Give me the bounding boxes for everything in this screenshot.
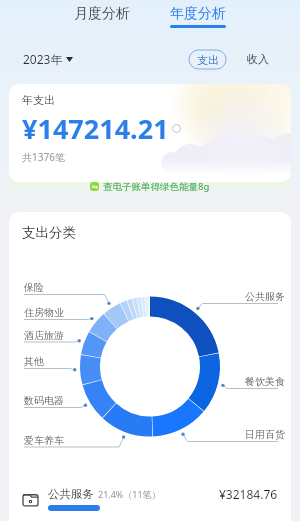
button[interactable]: 年度分析 — [156, 0, 240, 34]
staticText: 爱车养车 — [24, 434, 64, 447]
staticText: 收入 — [247, 52, 269, 66]
staticText: 公共服务 — [245, 290, 285, 303]
staticText: 共1376笔 — [22, 150, 65, 164]
staticText: 其他 — [24, 355, 44, 368]
staticText: 公共服务 — [48, 487, 94, 501]
staticText: 2023年 — [23, 51, 63, 67]
staticText: 年支出 — [22, 93, 55, 107]
staticText: 支出 — [197, 53, 219, 67]
button[interactable]: 2023年 — [23, 48, 73, 70]
staticText: 日用百货 — [245, 428, 285, 441]
staticText: 酒店旅游 — [24, 329, 64, 342]
staticText: ¥32184.76 — [219, 486, 278, 502]
staticText: 住房物业 — [24, 306, 64, 319]
button[interactable]: 支出 — [189, 50, 226, 69]
staticText: 能量 — [92, 185, 98, 189]
button[interactable]: 公共服务 — [9, 477, 291, 521]
staticText: 查电子账单得绿色能量8g — [103, 180, 210, 193]
staticText: 餐饮美食 — [245, 375, 285, 388]
staticText: 年度分析 — [170, 5, 226, 23]
button[interactable]: 说明 — [172, 124, 181, 133]
staticText: 保险 — [24, 281, 44, 294]
button[interactable]: 收入 — [247, 52, 269, 66]
button[interactable]: 月度分析 — [60, 0, 144, 34]
staticText: 21.4%（11笔） — [98, 488, 161, 500]
staticText: ¥147214.21 — [22, 110, 169, 147]
staticText: 支出分类 — [22, 224, 76, 241]
staticText: 数码电器 — [24, 394, 64, 407]
staticText: 月度分析 — [74, 5, 130, 23]
